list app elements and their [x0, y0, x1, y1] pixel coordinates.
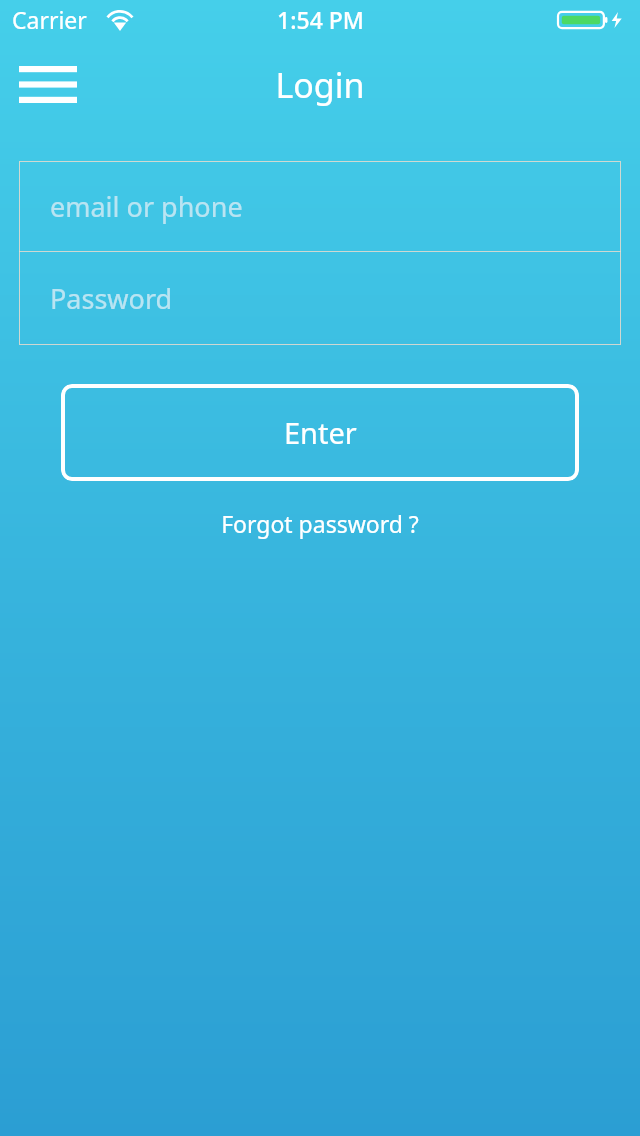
- button[interactable]: Forgot password ?: [209, 502, 431, 545]
- button[interactable]: Enter: [61, 384, 579, 481]
- staticText: email or phone: [50, 188, 243, 225]
- staticText: 1:54 PM: [277, 4, 364, 35]
- staticText: Enter: [284, 413, 357, 452]
- button[interactable]: Menu: [10, 54, 86, 114]
- staticText: Password: [50, 280, 173, 317]
- staticText: Forgot password ?: [221, 508, 419, 539]
- staticText: Carrier: [12, 4, 87, 35]
- staticText: Login: [275, 62, 365, 108]
- button[interactable]: email or phone: [19, 161, 621, 251]
- button[interactable]: Password: [19, 252, 621, 345]
